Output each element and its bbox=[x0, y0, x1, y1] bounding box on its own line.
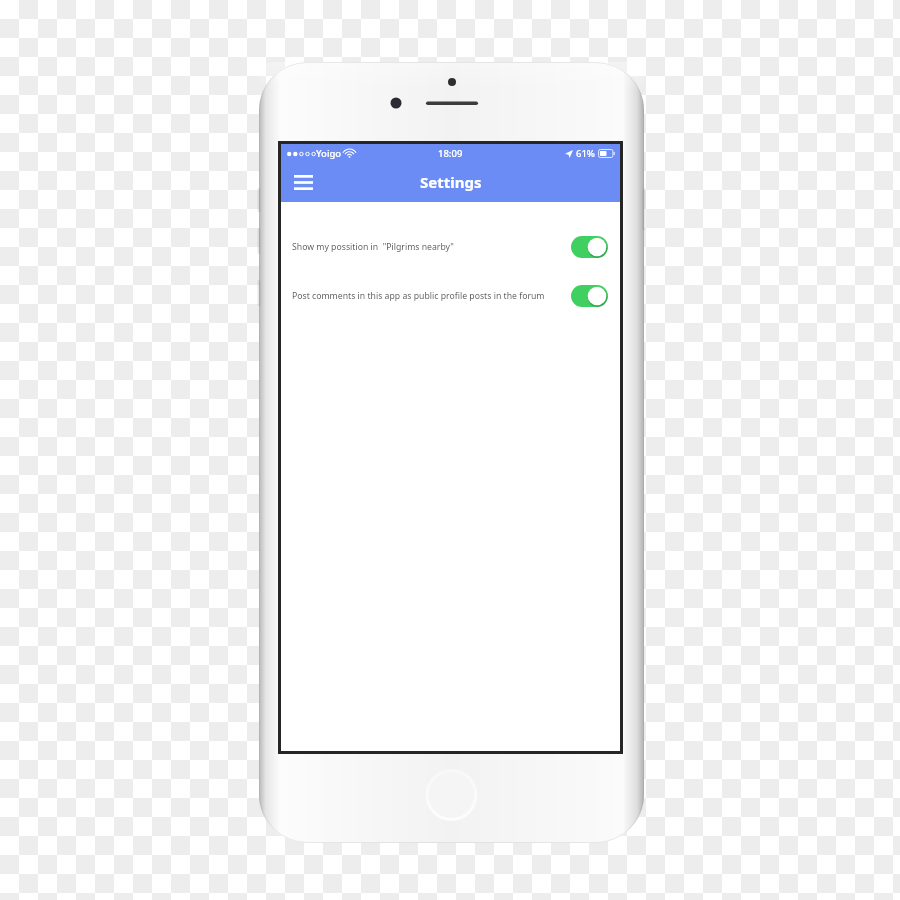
staticText: Post comments in this app as public prof… bbox=[292, 290, 545, 302]
staticText: Settings bbox=[420, 172, 482, 192]
staticText: Show my possition in "Pilgrims nearby" bbox=[292, 241, 454, 253]
button[interactable]: Post comments in this app as public prof… bbox=[281, 274, 620, 318]
staticText: Yoigo bbox=[316, 147, 342, 160]
button[interactable]: Open navigation menu bbox=[288, 167, 318, 197]
button[interactable]: Show my possition in "Pilgrims nearby" bbox=[281, 227, 620, 267]
staticText: 18:09 bbox=[438, 147, 463, 160]
button[interactable]: Setting enabled, toggle off bbox=[571, 236, 608, 258]
staticText: 61% bbox=[576, 147, 595, 160]
button[interactable]: Setting enabled, toggle off bbox=[571, 285, 608, 307]
